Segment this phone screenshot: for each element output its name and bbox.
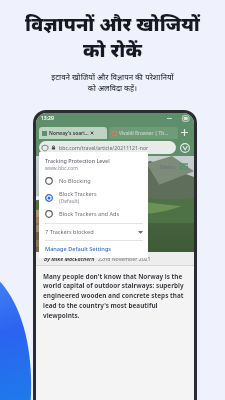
staticText: 22nd November 2021 <box>98 255 151 262</box>
button[interactable]: Vivaldi menu <box>178 141 191 154</box>
staticText: By Mike MacEachern <box>44 255 95 262</box>
staticText: Tracking Protection Level <box>45 157 110 164</box>
staticText: Block Trackers and Ads <box>59 210 120 218</box>
button[interactable]: Manage Default Settings <box>45 245 112 253</box>
staticText: 13:29 <box>41 115 54 122</box>
button[interactable]: No Blocking <box>45 177 143 185</box>
staticText: bbc.com/travel/article/20211121-nor <box>59 144 149 151</box>
staticText: विज्ञापनों और खोजियों को रोकें <box>25 11 200 62</box>
button[interactable]: 7 Trackers blocked <box>45 228 143 236</box>
button[interactable]: New tab <box>178 126 191 139</box>
button[interactable]: bbc.com/travel/article/20211121-nor <box>39 141 176 154</box>
staticText: इटावने खोजियों और विज्ञापन की परेशानियों… <box>51 72 174 93</box>
staticText: Manage Default Settings <box>45 245 112 253</box>
button[interactable]: Vivaldi Browser | Th… <box>109 127 178 139</box>
button[interactable]: Block Trackers and Ads <box>45 210 143 218</box>
staticText: 7 Trackers blocked <box>45 228 94 236</box>
staticText: No Blocking <box>59 177 91 185</box>
button[interactable]: Norway's soari… <box>39 127 107 139</box>
staticText: (Default) <box>59 198 80 205</box>
button[interactable]: Block Trackers <box>45 190 143 205</box>
button[interactable]: Menu <box>158 161 190 172</box>
staticText: Vivaldi Browser | Th… <box>119 130 169 137</box>
staticText: Menu <box>160 163 176 170</box>
staticText: Block Trackers <box>59 190 97 198</box>
staticText: Norway's soari… <box>49 130 89 137</box>
staticText: Many people don't know that Norway is th… <box>43 272 187 320</box>
staticText: www.bbc.com <box>45 165 78 172</box>
